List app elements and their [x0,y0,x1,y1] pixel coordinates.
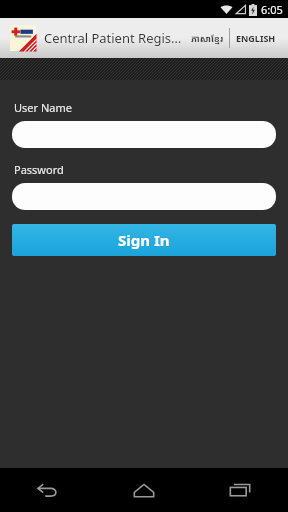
staticText: Central Patient Regis… [44,29,186,47]
button[interactable]: Home [96,468,192,512]
staticText: ENGLISH [236,32,276,44]
button[interactable]: App logo [10,25,36,51]
staticText: User Name [14,100,72,115]
staticText: 6:05 [261,2,283,17]
button[interactable]: Text input [12,183,276,210]
button[interactable]: Back [0,468,96,512]
button[interactable]: ENGLISH [230,26,282,50]
staticText: Sign In [118,230,170,250]
button[interactable]: ភាសាខ្មែរ [186,26,229,50]
button[interactable]: Recents [192,468,288,512]
staticText: ភាសាខ្មែរ [191,32,224,44]
staticText: Password [14,162,64,177]
button[interactable]: Sign In [12,224,276,256]
button[interactable]: Text input [12,121,276,148]
